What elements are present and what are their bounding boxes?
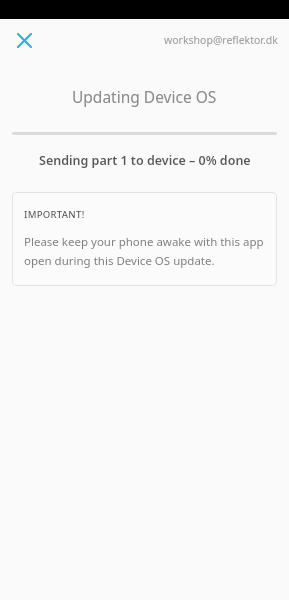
button[interactable]: Close [7,23,41,57]
staticText: Updating Device OS [72,86,217,107]
staticText: Please keep your phone awake with this a… [24,234,265,268]
button[interactable]: IMPORTANT! [12,192,277,286]
button[interactable]: workshop@reflektor.dk [164,33,278,47]
staticText: workshop@reflektor.dk [164,33,278,47]
staticText: Sending part 1 to device – 0% done [39,152,251,169]
staticText: IMPORTANT! [24,208,85,221]
